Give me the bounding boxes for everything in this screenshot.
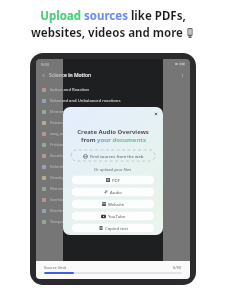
staticText: Kinetics (50, 208, 66, 214)
staticText: Momentum (50, 186, 74, 192)
staticText: Velocity (50, 164, 66, 170)
staticText: Create Audio Overviews (77, 128, 149, 136)
button[interactable]: Action and Reaction (36, 84, 190, 95)
staticText: Elemental Physics (50, 109, 86, 115)
staticText: PDF (112, 177, 120, 183)
staticText: websites, videos and more (31, 25, 186, 41)
other: More options (180, 73, 185, 78)
staticText: Website (108, 201, 125, 207)
staticText: YouTube (108, 213, 126, 219)
button[interactable]: Balanced and Unbalanced reactions (36, 95, 190, 106)
staticText: Or upload your files (94, 167, 132, 172)
button[interactable]: Velocity (36, 161, 190, 172)
staticText: Balanced and Unbalanced reactions (50, 98, 121, 104)
staticText: Copied text (105, 225, 128, 231)
button[interactable]: Gravity notes (36, 172, 190, 183)
button[interactable]: Forces At Play (36, 117, 190, 128)
staticText: Action and Reaction (50, 87, 90, 93)
staticText: Source limit (44, 265, 67, 270)
staticText: Torque (50, 219, 64, 225)
button[interactable]: YouTube (71, 211, 155, 221)
staticText: Gravity notes (50, 175, 76, 181)
staticText: Inertia (50, 197, 64, 203)
button[interactable]: Friction Energy (36, 139, 190, 150)
button[interactable]: Copied text (71, 223, 155, 233)
staticText: Friction Energy (50, 142, 80, 148)
button[interactable]: Back (36, 69, 190, 82)
button[interactable]: Find sources from the web (71, 150, 155, 161)
staticText: 6/50 (173, 265, 182, 270)
button[interactable]: Inertia (36, 194, 190, 205)
button[interactable]: Kinetics (36, 205, 190, 216)
staticText: Acceleration (50, 153, 75, 159)
button[interactable]: PDF (71, 175, 155, 185)
button[interactable]: neq_norm (36, 128, 190, 139)
staticText: Science in Motion (49, 72, 92, 79)
staticText: Forces At Play (50, 120, 78, 126)
staticText: Find sources from the web (90, 153, 144, 159)
button[interactable]: Audio (71, 187, 155, 197)
staticText: from your documents (81, 136, 146, 144)
staticText: Audio (110, 189, 122, 195)
staticText: Upload sources like PDFs, (40, 8, 186, 24)
button[interactable]: Momentum (36, 183, 190, 194)
button[interactable]: Website (71, 199, 155, 209)
button[interactable]: Acceleration (36, 150, 190, 161)
other: Back (41, 73, 46, 78)
staticText: neq_norm (50, 131, 71, 137)
button[interactable]: Close (153, 111, 159, 117)
button[interactable]: Torque (36, 216, 190, 227)
button[interactable]: Elemental Physics (36, 106, 190, 117)
staticText: 9:30 (41, 62, 49, 67)
